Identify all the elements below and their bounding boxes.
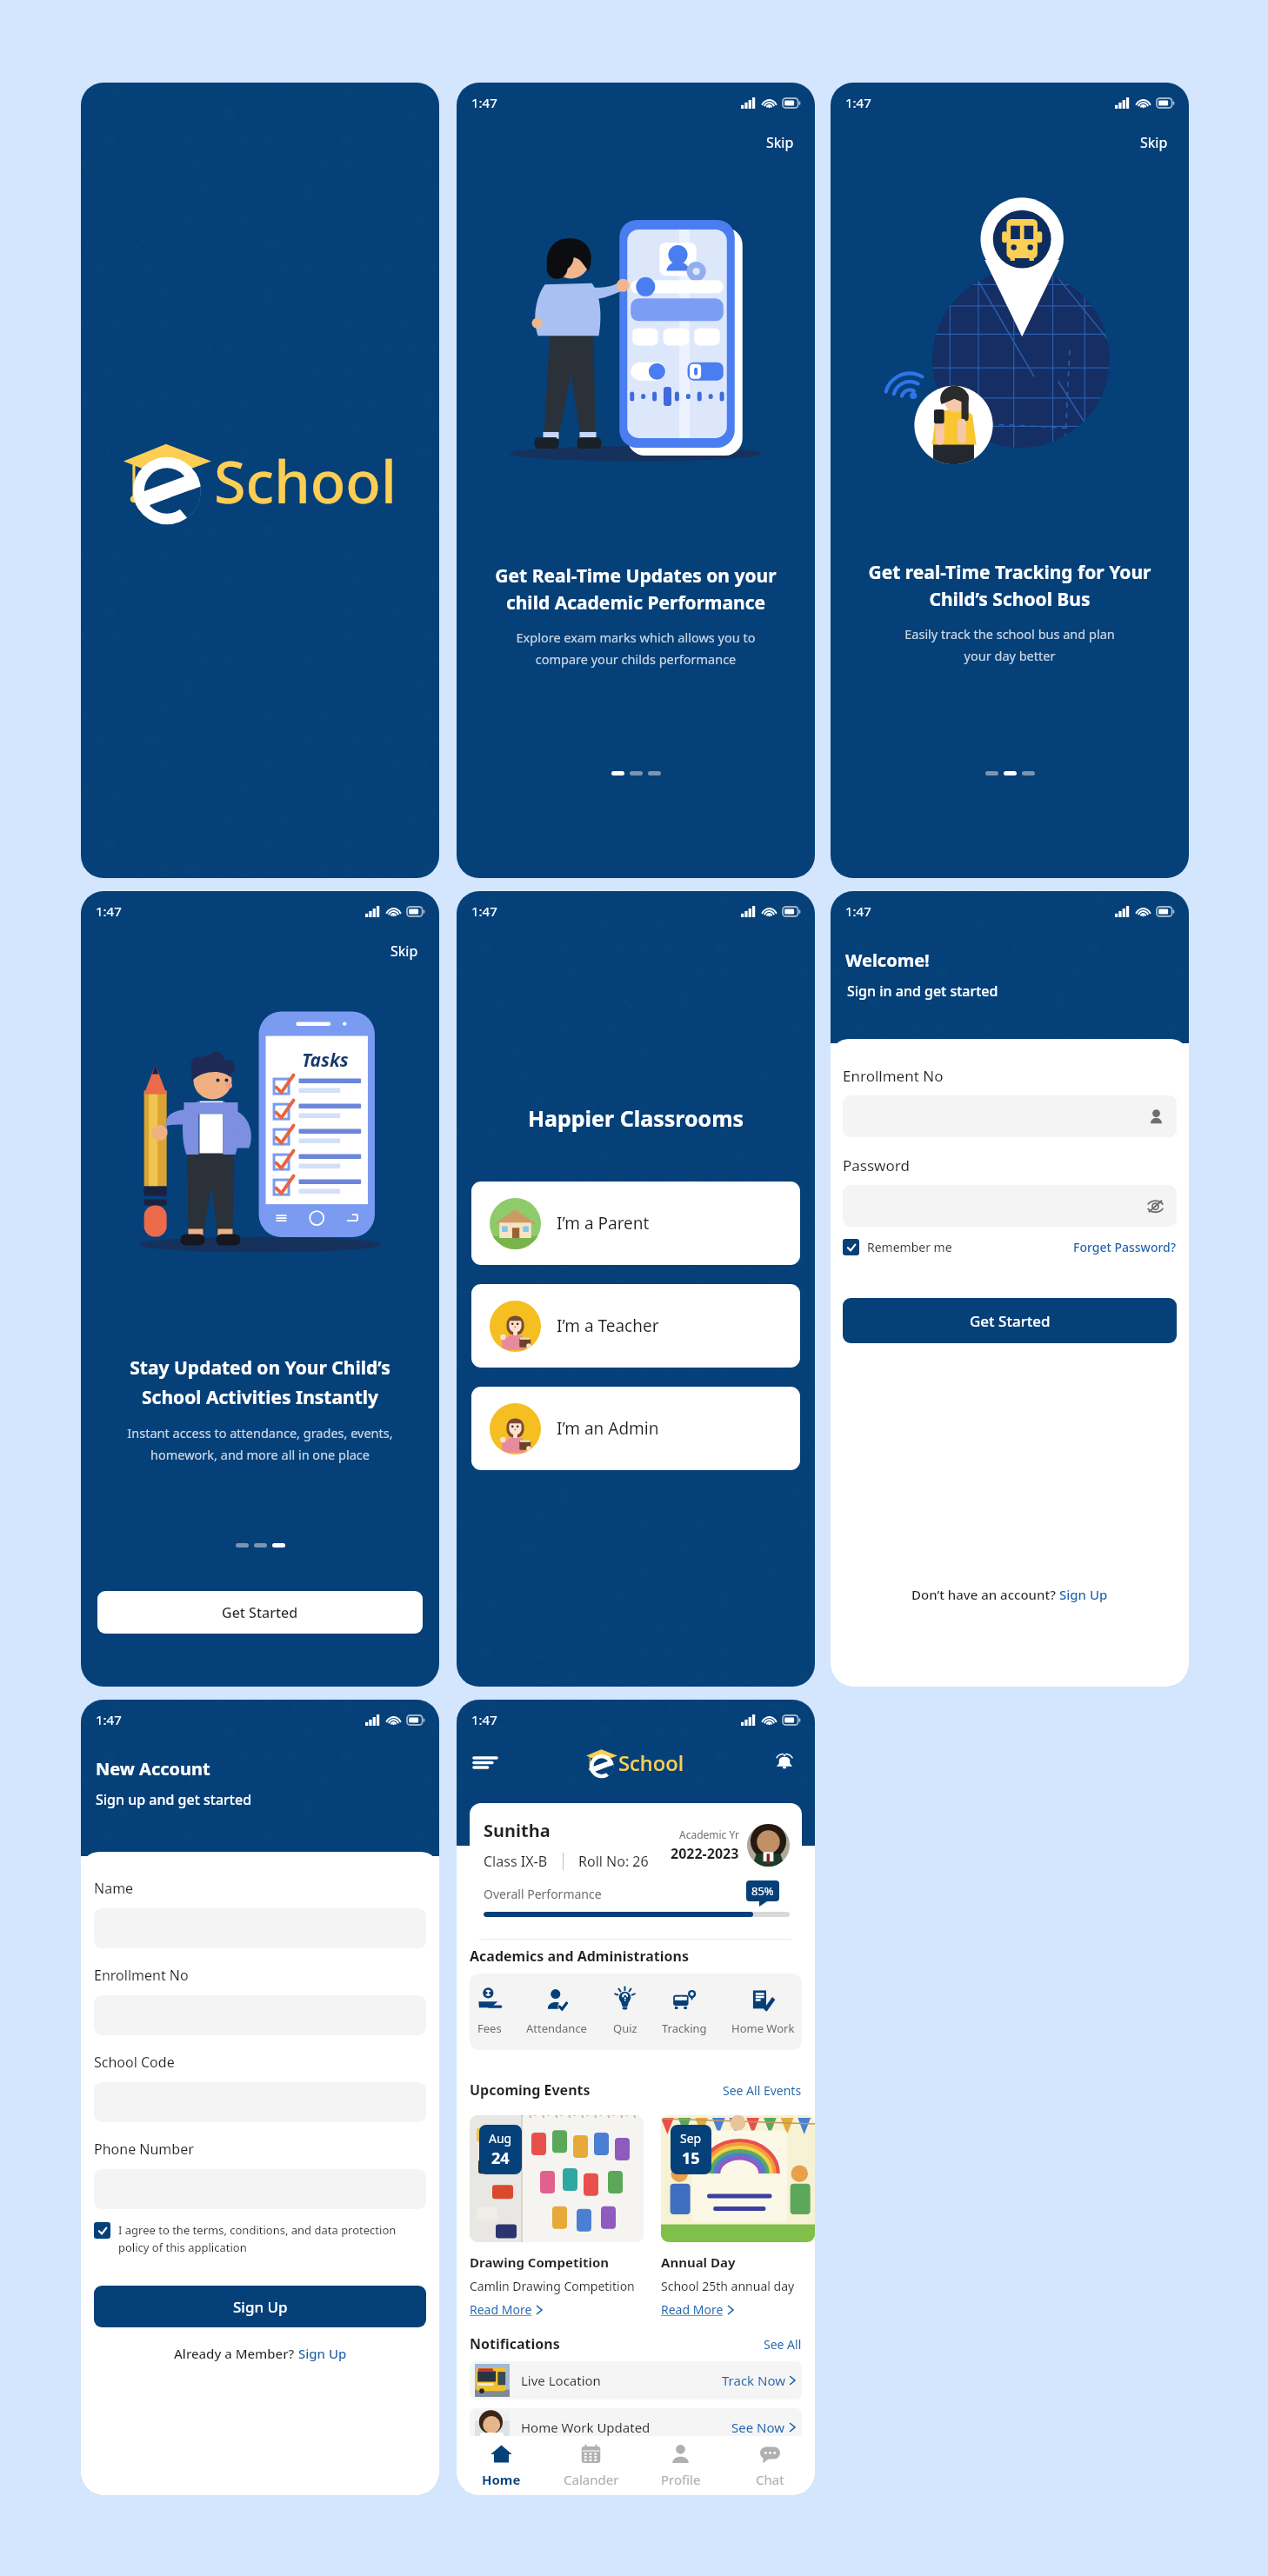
staticText: Drawing Competition <box>470 2253 610 2271</box>
staticText: Calander <box>564 2471 619 2488</box>
staticText: 1:47 <box>96 1711 122 1728</box>
button[interactable]: See All Events <box>723 2082 802 2099</box>
staticText: 15 <box>682 2147 700 2169</box>
staticText: Skip <box>390 942 418 961</box>
staticText: See All <box>764 2336 802 2353</box>
button[interactable]: Home <box>457 2438 546 2493</box>
button[interactable]: Don’t have an account? <box>843 1586 1177 1603</box>
staticText: Enrollment No <box>843 1066 944 1086</box>
staticText: Overall Performance <box>484 1886 602 1902</box>
staticText: 1:47 <box>845 94 871 111</box>
staticText: Home Work Updated <box>521 2419 651 2436</box>
button[interactable]: Get Started <box>843 1298 1177 1343</box>
button[interactable]: Notifications <box>771 1749 798 1775</box>
staticText: Explore exam marks which allows you to c… <box>457 629 815 669</box>
staticText: Sign Up <box>1059 1586 1108 1603</box>
button[interactable]: Tracking <box>660 1987 709 2036</box>
button[interactable]: Home Work Updated <box>470 2408 802 2446</box>
button[interactable]: See All <box>764 2336 802 2353</box>
staticText: Quiz <box>613 2020 637 2036</box>
button[interactable]: Aug <box>470 2115 644 2318</box>
staticText: Camlin Drawing Competition <box>470 2278 635 2294</box>
staticText: Password <box>843 1155 910 1175</box>
button[interactable]: I agree to the terms, conditions, and da… <box>94 2222 426 2255</box>
button[interactable]: Live Location <box>470 2361 802 2400</box>
staticText: Sign Up <box>233 2297 288 2317</box>
staticText: School 25th annual day celeb <box>661 2278 815 2294</box>
staticText: Happier Classrooms <box>457 1103 815 1133</box>
staticText: See Now <box>731 2419 785 2436</box>
staticText: Enrollment No <box>94 1966 189 1985</box>
staticText: Stay Updated on Your Child’s School Acti… <box>81 1355 439 1409</box>
staticText: Sign up and get started <box>96 1790 252 1809</box>
button[interactable]: Home Work <box>730 1987 797 2036</box>
staticText: Home <box>482 2471 521 2488</box>
staticText: See All Events <box>723 2082 802 2099</box>
staticText: I’m an Admin <box>557 1417 659 1440</box>
staticText: 1:47 <box>471 1711 497 1728</box>
staticText: Home Work <box>731 2020 795 2036</box>
staticText: Aug <box>489 2130 512 2147</box>
staticText: I’m a Parent <box>557 1212 650 1235</box>
button[interactable]: Fees <box>475 1987 504 2036</box>
staticText: Sep <box>680 2130 702 2147</box>
button[interactable]: Password <box>843 1185 1177 1227</box>
button[interactable]: Already a Member? <box>94 2345 426 2362</box>
staticText: Tasks <box>302 1048 349 1073</box>
staticText: Don’t have an account? <box>911 1586 1059 1603</box>
button[interactable]: Skip <box>1137 130 1171 156</box>
staticText: Welcome! <box>845 949 930 972</box>
staticText: Get real-Time Tracking for Your Child’s … <box>831 560 1189 611</box>
staticText: 1:47 <box>845 902 871 920</box>
staticText: Already a Member? <box>174 2345 298 2362</box>
staticText: Instant access to attendance, grades, ev… <box>81 1424 439 1464</box>
button[interactable]: Chat <box>725 2438 815 2493</box>
button[interactable]: Skip <box>763 130 798 156</box>
staticText: Sign Up <box>298 2345 347 2362</box>
staticText: Track Now <box>722 2372 785 2389</box>
button[interactable]: Attendance <box>524 1987 589 2036</box>
staticText: I agree to the terms, conditions, and da… <box>118 2222 426 2255</box>
staticText: 24 <box>491 2147 510 2169</box>
button[interactable]: I’m a Teacher <box>471 1284 800 1368</box>
staticText: Attendance <box>526 2020 587 2036</box>
button[interactable]: I’m a Parent <box>471 1181 800 1265</box>
staticText: Fees <box>477 2020 502 2036</box>
staticText: 1:47 <box>96 902 122 920</box>
button[interactable]: Sign Up <box>94 2286 426 2327</box>
staticText: Tracking <box>662 2020 707 2036</box>
staticText: Roll No: 26 <box>578 1852 649 1871</box>
button[interactable]: Forget Password? <box>1073 1239 1177 1255</box>
button[interactable]: Quiz <box>611 1987 639 2036</box>
staticText: Remember me <box>867 1239 952 1255</box>
staticText: Skip <box>766 133 794 152</box>
button[interactable]: Menu <box>474 1749 500 1775</box>
staticText: I’m a Teacher <box>557 1315 659 1337</box>
staticText: Skip <box>1140 133 1168 152</box>
staticText: Upcoming Events <box>470 2080 591 2100</box>
staticText: Name <box>94 1879 134 1898</box>
staticText: Annual Day <box>661 2253 736 2271</box>
staticText: Academics and Administrations <box>470 1947 689 1966</box>
staticText: Class IX-B <box>484 1852 548 1871</box>
staticText: Chat <box>756 2471 784 2488</box>
button[interactable]: I’m an Admin <box>471 1387 800 1470</box>
staticText: Get Started <box>970 1311 1051 1331</box>
button[interactable]: Sep <box>661 2115 815 2318</box>
staticText: Forget Password? <box>1073 1239 1177 1255</box>
staticText: Easily track the school bus and plan you… <box>831 625 1189 665</box>
button[interactable]: Profile <box>636 2438 725 2493</box>
button[interactable]: Skip <box>387 938 422 964</box>
button[interactable]: Remember me <box>843 1239 952 1255</box>
staticText: Phone Number <box>94 2140 194 2159</box>
staticText: 1:47 <box>471 94 497 111</box>
staticText: School Code <box>94 2053 175 2072</box>
button[interactable]: Calander <box>546 2438 636 2493</box>
button[interactable]: Enrollment No <box>843 1095 1177 1137</box>
staticText: 2022-2023 <box>671 1844 739 1863</box>
button[interactable]: Get Started <box>97 1591 423 1634</box>
